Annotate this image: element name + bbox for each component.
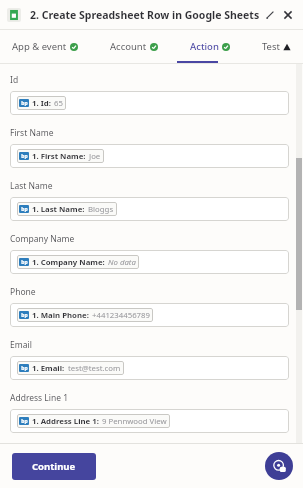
button[interactable]: Continue [12,453,96,480]
staticText: 1. Company Name: [32,257,105,268]
button[interactable]: Action [188,36,232,57]
button[interactable]: Account [108,36,160,57]
button[interactable]: bp [10,250,289,274]
staticText: Continue [32,460,76,473]
staticText: 9 Pennwood View [102,416,167,427]
staticText: bp [21,365,28,372]
staticText: Phone [10,286,36,298]
staticText: +441234456789 [92,310,150,321]
staticText: Joe [89,151,101,162]
staticText: 1. Main Phone: [32,310,89,321]
staticText: 1. Id: [32,98,51,109]
button[interactable]: Help [265,452,293,480]
button[interactable]: bp [10,356,289,380]
staticText: Account [110,40,147,53]
button[interactable]: bp [10,409,289,433]
staticText: 1. Address Line 1: [32,416,99,427]
staticText: Company Name [10,233,75,245]
staticText: 1. Last Name: [32,204,85,215]
staticText: Bloggs [88,204,114,215]
button[interactable]: Test [260,36,293,57]
staticText: bp [21,153,28,160]
staticText: Last Name [10,180,53,192]
staticText: bp [21,312,28,319]
staticText: 1. Email: [32,363,65,374]
button[interactable]: bp [10,91,289,115]
staticText: bp [21,206,28,213]
staticText: 65 [54,98,63,109]
staticText: bp [21,100,28,107]
button[interactable]: Edit [260,5,280,25]
staticText: bp [21,418,28,425]
staticText: test@test.com [68,363,121,374]
button[interactable]: bp [10,303,289,327]
staticText: Id [10,74,19,86]
staticText: 1. First Name: [32,151,86,162]
staticText: Address Line 1 [10,392,69,404]
button[interactable]: App & event [10,36,80,57]
staticText: Action [190,40,219,53]
staticText: First Name [10,127,54,139]
staticText: No data [108,257,136,268]
staticText: Test [262,40,280,53]
staticText: App & event [12,40,67,53]
button[interactable]: Close [280,5,296,25]
button[interactable]: bp [10,197,289,221]
staticText: bp [21,259,28,266]
staticText: 2. Create Spreadsheet Row in Google Shee… [30,8,260,22]
staticText: Email [10,339,32,351]
button[interactable]: bp [10,144,289,168]
